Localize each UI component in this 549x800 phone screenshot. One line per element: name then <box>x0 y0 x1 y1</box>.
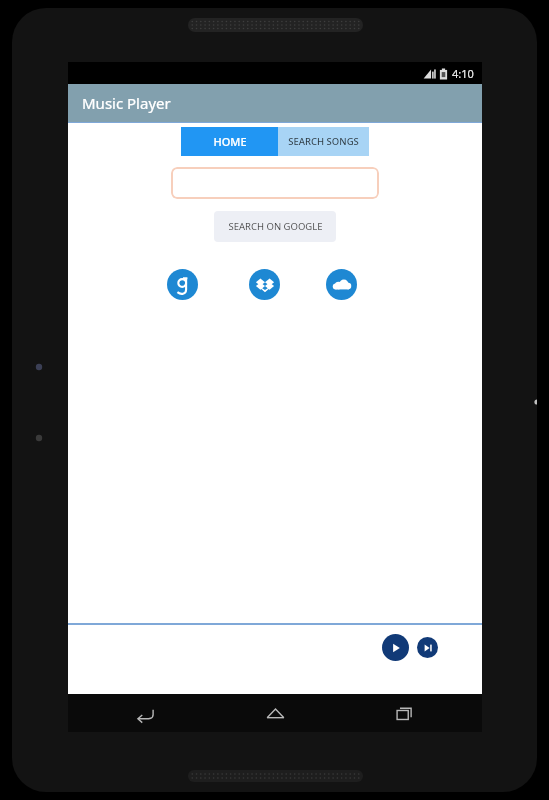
staticText: SEARCH ON GOOGLE <box>228 220 323 233</box>
button[interactable] <box>171 167 379 199</box>
staticText: SEARCH SONGS <box>288 135 359 148</box>
staticText: HOME <box>213 134 247 149</box>
button[interactable]: Back <box>124 694 166 732</box>
button[interactable]: Next <box>417 637 438 658</box>
button[interactable]: OneDrive <box>323 266 359 302</box>
button[interactable]: SEARCH SONGS <box>278 127 369 156</box>
staticText: 4:10 <box>452 66 474 81</box>
staticText: Music Player <box>82 93 171 113</box>
button[interactable]: HOME <box>181 127 278 156</box>
button[interactable]: Play <box>382 634 409 661</box>
button[interactable]: SEARCH ON GOOGLE <box>214 211 336 242</box>
button[interactable]: Dropbox <box>246 266 282 302</box>
button[interactable]: Google <box>164 266 200 302</box>
button[interactable]: Recents <box>384 694 426 732</box>
button[interactable]: Home <box>254 694 296 732</box>
